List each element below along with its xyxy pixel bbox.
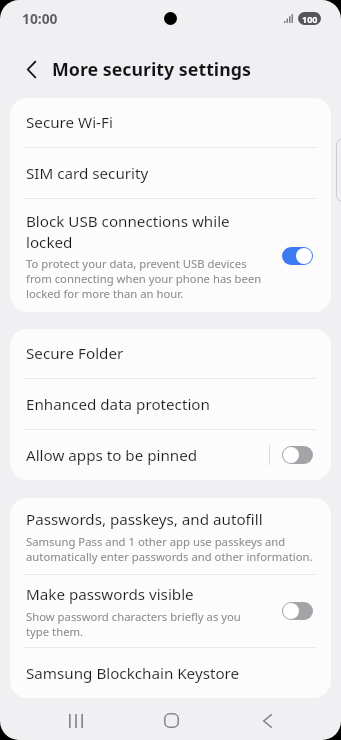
button[interactable]: Make passwords visible	[10, 575, 331, 647]
button[interactable]: Back	[19, 57, 43, 81]
button[interactable]: Passwords, passkeys, and autofill	[10, 498, 331, 574]
staticText: Allow apps to be pinned	[26, 445, 198, 466]
button[interactable]: Secure Folder	[10, 329, 331, 378]
button[interactable]: Home	[123, 699, 219, 740]
button[interactable]: Allow apps to be pinned	[10, 430, 331, 480]
button[interactable]: Back	[219, 699, 315, 740]
staticText: Secure Wi-Fi	[26, 112, 113, 133]
staticText: Block USB connections while locked	[26, 211, 265, 252]
button[interactable]: SIM card security	[10, 148, 331, 198]
staticText: Make passwords visible	[26, 584, 194, 605]
staticText: Show password characters briefly as you …	[26, 609, 265, 639]
staticText: 10:00	[22, 9, 58, 28]
staticText: To protect your data, prevent USB device…	[26, 256, 265, 301]
staticText: More security settings	[52, 57, 251, 81]
button[interactable]: Samsung Blockchain Keystore	[10, 648, 331, 698]
staticText: Passwords, passkeys, and autofill	[26, 509, 263, 530]
button[interactable]: Toggle	[282, 247, 313, 265]
button[interactable]: Toggle	[282, 446, 313, 464]
button[interactable]: Block USB connections while locked	[10, 199, 331, 312]
staticText: Secure Folder	[26, 343, 124, 364]
staticText: Samsung Blockchain Keystore	[26, 663, 240, 684]
button[interactable]: Recents	[28, 699, 123, 740]
button[interactable]: Toggle	[282, 602, 313, 620]
button[interactable]: Secure Wi-Fi	[10, 98, 331, 147]
staticText: Samsung Pass and 1 other app use passkey…	[26, 534, 317, 564]
staticText: Enhanced data protection	[26, 394, 210, 415]
staticText: SIM card security	[26, 163, 149, 184]
button[interactable]: Enhanced data protection	[10, 379, 331, 429]
staticText: 100	[302, 13, 318, 25]
